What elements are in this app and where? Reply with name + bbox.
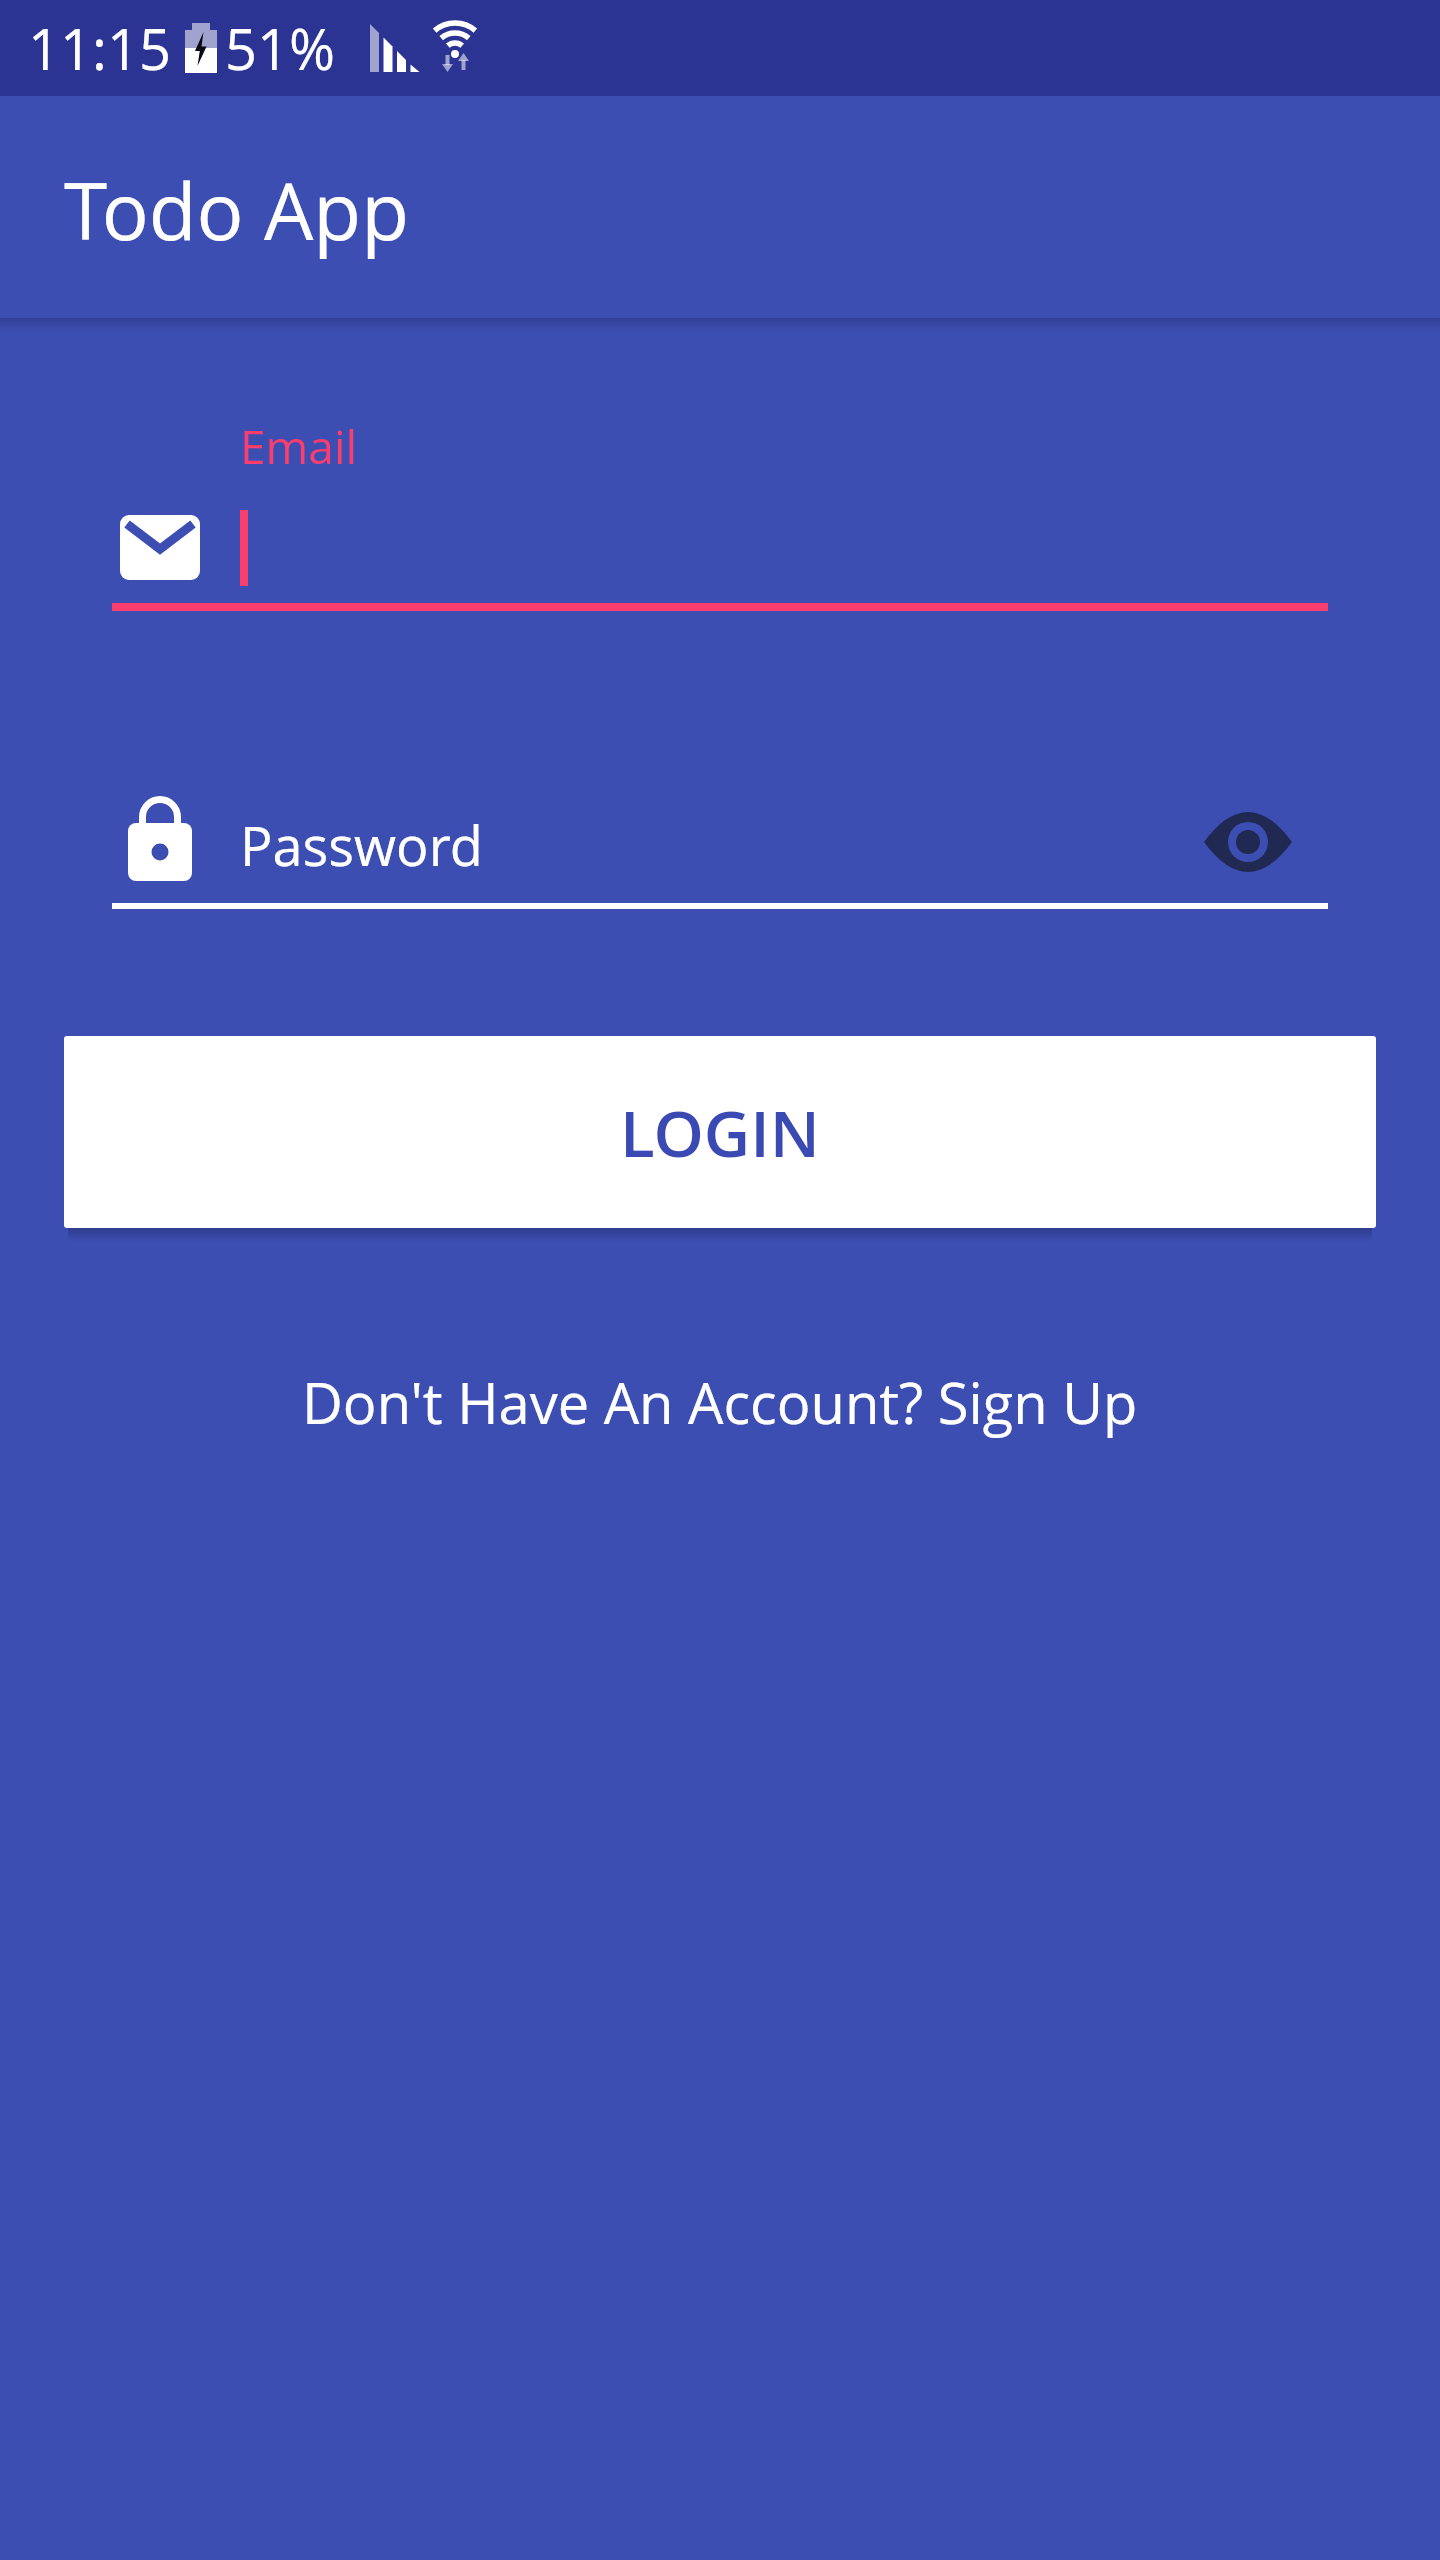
- staticText: Password: [240, 808, 483, 882]
- button[interactable]: LOGIN: [64, 1036, 1376, 1228]
- button[interactable]: Don't Have An Account? Sign Up: [302, 1364, 1138, 1440]
- staticText: 11:15: [28, 10, 171, 86]
- button[interactable]: Password: [112, 790, 1328, 909]
- staticText: Todo App: [64, 157, 409, 263]
- button[interactable]: Email: [112, 415, 1328, 615]
- staticText: 51%: [225, 10, 336, 86]
- staticText: Email: [240, 415, 358, 478]
- button[interactable]: [1196, 802, 1300, 882]
- staticText: LOGIN: [620, 1089, 820, 1176]
- staticText: Don't Have An Account? Sign Up: [302, 1364, 1138, 1440]
